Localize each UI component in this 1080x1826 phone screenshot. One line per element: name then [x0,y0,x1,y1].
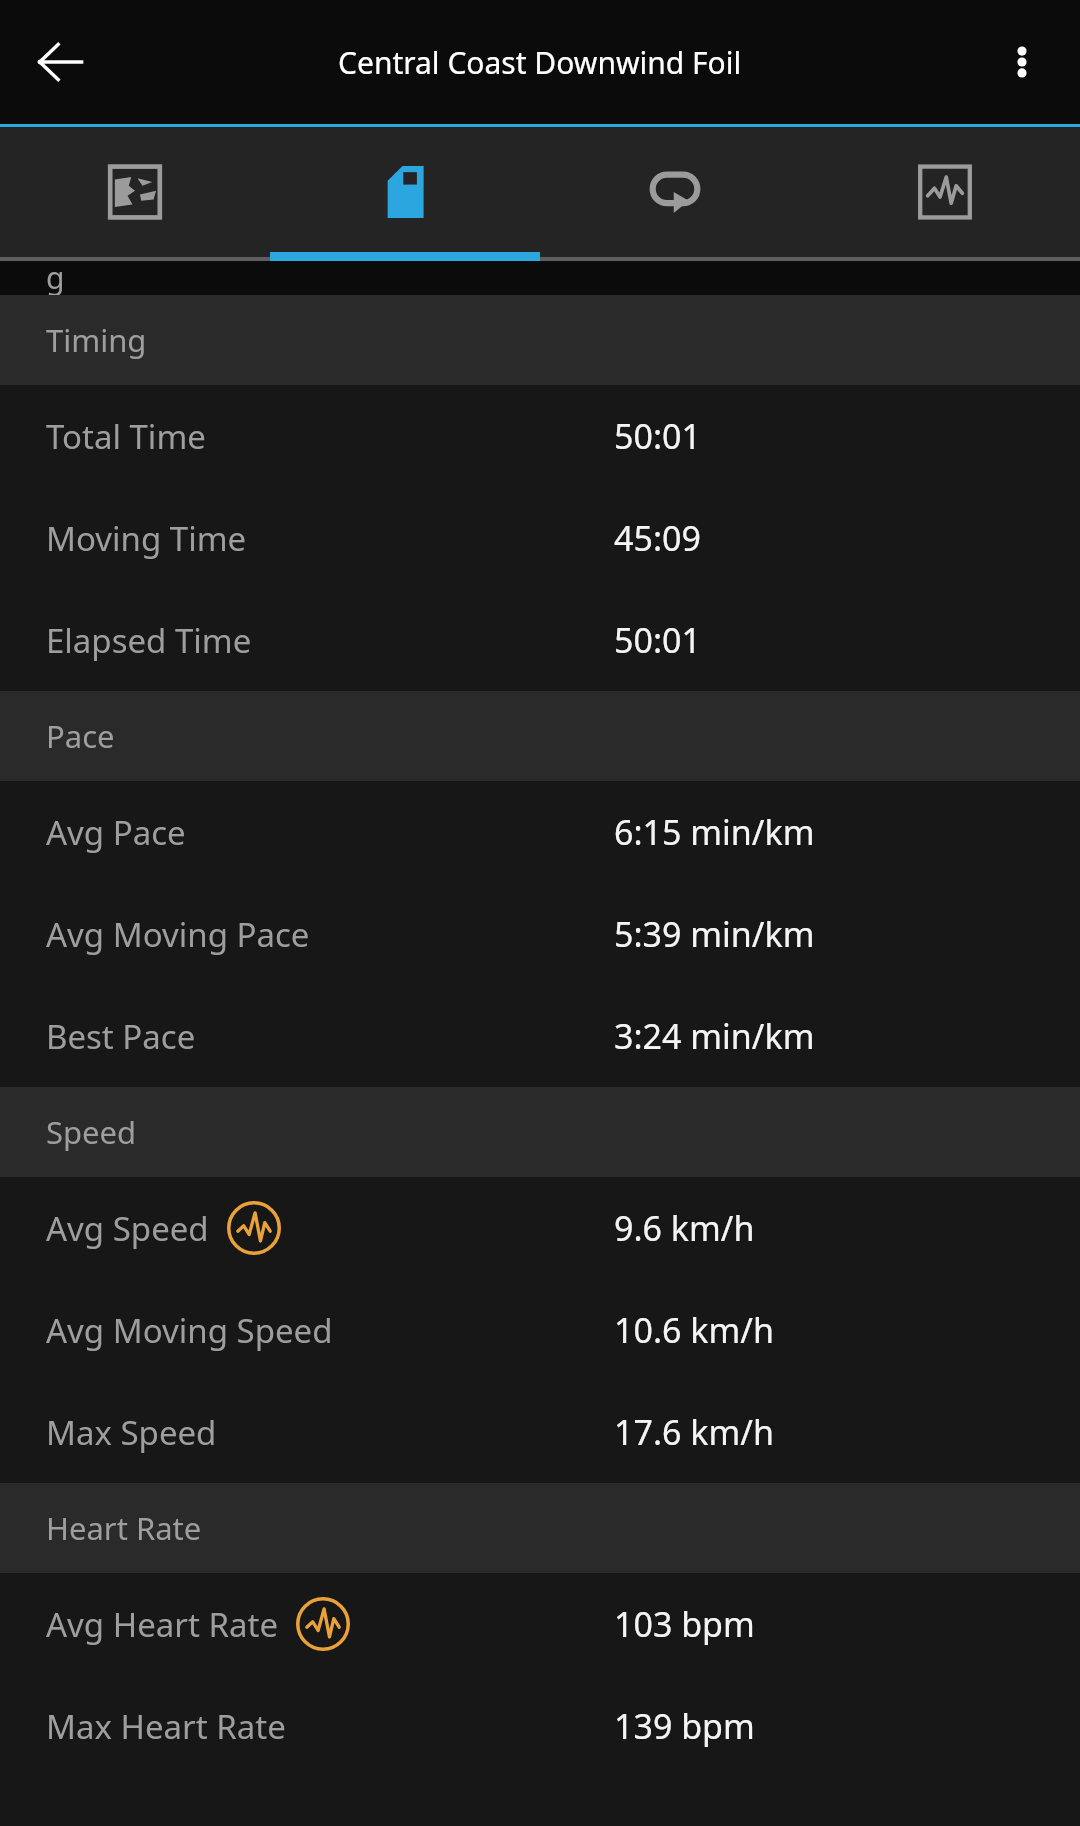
staticText: 9.6 km/h [614,1205,755,1251]
button[interactable]: Graphs [810,127,1080,257]
staticText: 139 bpm [614,1703,755,1749]
staticText: 45:09 [614,515,701,561]
button[interactable]: Speed [0,1087,1080,1177]
button[interactable]: Avg Moving Speed [0,1279,1080,1381]
staticText: 17.6 km/h [614,1409,774,1455]
staticText: 50:01 [614,617,701,663]
button[interactable]: Laps [540,127,810,257]
staticText: Timing [46,319,147,361]
staticText: Avg Heart Rate [46,1602,278,1647]
staticText: Avg Moving Pace [46,912,310,957]
button[interactable]: Avg Pace [0,781,1080,883]
button[interactable]: Avg Speed [0,1177,1080,1279]
button[interactable]: Total Time [0,385,1080,487]
staticText: 10.6 km/h [614,1307,774,1353]
staticText: Moving Time [46,516,247,561]
button[interactable]: Details [270,127,540,257]
staticText: 103 bpm [614,1601,755,1647]
staticText: 5:39 min/km [614,911,815,957]
button[interactable]: Avg Heart Rate [0,1573,1080,1675]
staticText: 3:24 min/km [614,1013,815,1059]
staticText: 6:15 min/km [614,809,815,855]
staticText: Total Time [46,414,206,459]
button[interactable]: Pace [0,691,1080,781]
button[interactable]: Elapsed Time [0,589,1080,691]
staticText: Pace [46,715,115,757]
staticText: Avg Pace [46,810,186,855]
button[interactable]: Back [18,20,102,104]
staticText: g [46,257,65,295]
staticText: Best Pace [46,1014,196,1059]
button[interactable]: Timing [0,295,1080,385]
button[interactable]: Best Pace [0,985,1080,1087]
button[interactable]: Max Speed [0,1381,1080,1483]
staticText: Speed [46,1111,137,1153]
staticText: Max Heart Rate [46,1704,286,1749]
staticText: Avg Speed [46,1206,209,1251]
button[interactable]: Map [0,127,270,257]
staticText: Central Coast Downwind Foil [338,42,742,83]
staticText: Avg Moving Speed [46,1308,333,1353]
staticText: 50:01 [614,413,701,459]
staticText: Elapsed Time [46,618,252,663]
staticText: Heart Rate [46,1507,202,1549]
button[interactable]: Max Heart Rate [0,1675,1080,1777]
button[interactable]: Heart Rate [0,1483,1080,1573]
button[interactable]: Moving Time [0,487,1080,589]
button[interactable]: More options [980,20,1064,104]
staticText: Max Speed [46,1410,217,1455]
button[interactable]: Avg Moving Pace [0,883,1080,985]
